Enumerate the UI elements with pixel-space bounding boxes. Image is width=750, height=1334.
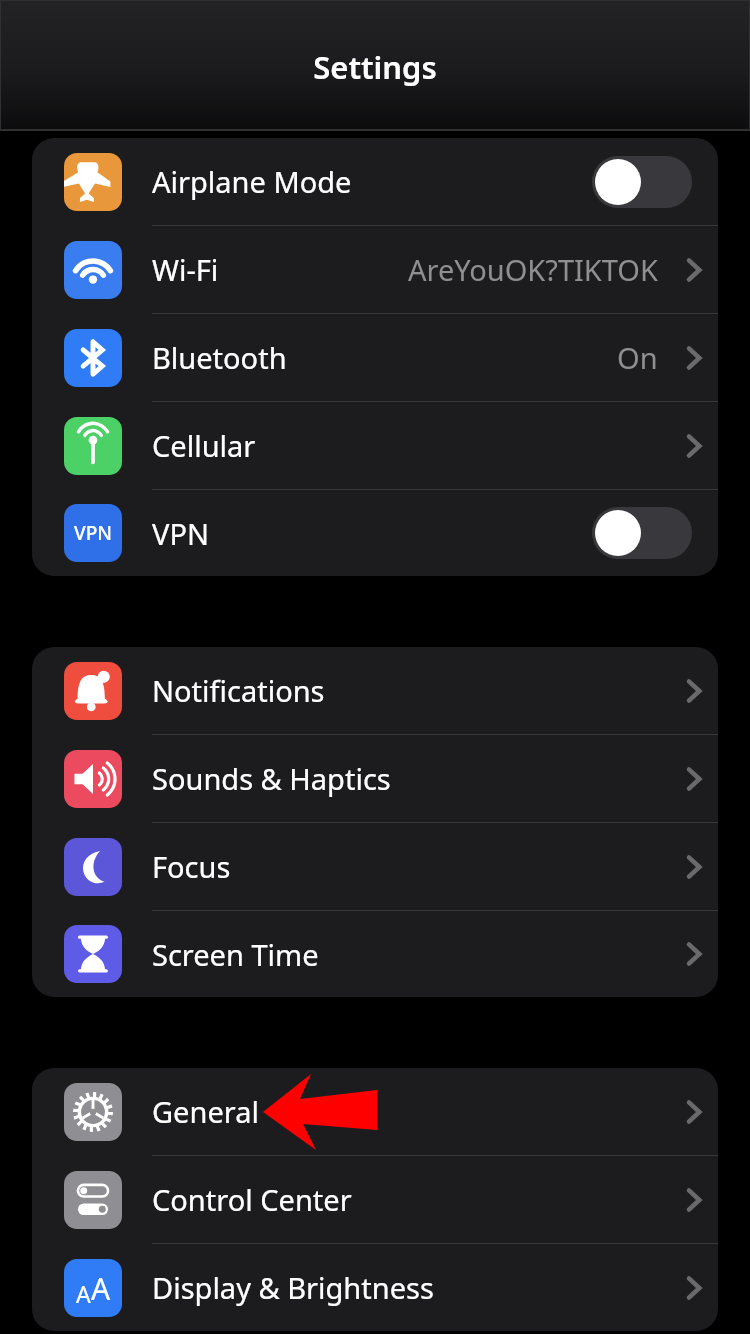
staticText: Control Center	[152, 1180, 352, 1219]
staticText: Focus	[152, 847, 231, 886]
staticText: Notifications	[152, 671, 325, 710]
button[interactable]: Cellular	[32, 402, 718, 489]
staticText: Screen Time	[152, 935, 319, 974]
staticText: Sounds & Haptics	[152, 759, 391, 798]
staticText: A	[91, 1268, 111, 1309]
staticText: Settings	[0, 46, 750, 88]
staticText: Cellular	[152, 426, 256, 465]
button[interactable]: Bluetooth	[32, 314, 718, 401]
button[interactable]: Toggle Airplane Mode	[582, 138, 714, 225]
button[interactable]: VPN	[32, 490, 718, 576]
button[interactable]: General	[32, 1068, 718, 1155]
button[interactable]: Toggle VPN	[582, 490, 714, 576]
button[interactable]: Sounds & Haptics	[32, 735, 718, 822]
staticText: AreYouOK?TIKTOK	[408, 250, 658, 289]
staticText: Display & Brightness	[152, 1268, 434, 1307]
staticText: Bluetooth	[152, 338, 287, 377]
button[interactable]: Screen Time	[32, 911, 718, 997]
button[interactable]: Wi-Fi	[32, 226, 718, 313]
button[interactable]: Notifications	[32, 647, 718, 734]
button[interactable]: A	[32, 1244, 718, 1331]
staticText: VPN	[152, 514, 209, 553]
button[interactable]: Airplane Mode	[32, 138, 718, 225]
button[interactable]: Focus	[32, 823, 718, 910]
button[interactable]: Control Center	[32, 1156, 718, 1243]
staticText: VPN	[74, 520, 113, 546]
staticText: General	[152, 1092, 259, 1131]
staticText: On	[617, 338, 658, 377]
staticText: A	[76, 1278, 91, 1309]
staticText: Airplane Mode	[152, 162, 352, 201]
staticText: Wi-Fi	[152, 250, 219, 289]
